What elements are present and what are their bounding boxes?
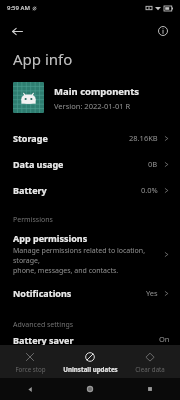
staticText: Force stop	[15, 365, 46, 373]
button[interactable]: Notifications	[0, 280, 180, 306]
button[interactable]: Battery saver	[0, 334, 180, 348]
staticText: 0.0%	[141, 185, 158, 195]
button[interactable]: Data usage	[0, 151, 180, 177]
button[interactable]: Clear data	[120, 348, 180, 376]
staticText: 9:59 AM	[7, 4, 30, 12]
staticText: App permissions	[13, 232, 88, 244]
staticText: Battery saver	[13, 334, 74, 346]
staticText: Version: 2022-01-01 R	[54, 101, 131, 111]
button[interactable]: Main components	[0, 80, 180, 115]
button[interactable]: Home	[60, 378, 120, 400]
button[interactable]: Recent apps	[120, 378, 180, 400]
button[interactable]: Uninstall updates	[60, 348, 120, 376]
staticText: Battery	[13, 184, 47, 196]
button[interactable]: Force stop	[0, 348, 60, 376]
staticText: Main components	[54, 85, 140, 98]
staticText: Data usage	[13, 158, 64, 170]
button[interactable]: Storage	[0, 125, 180, 151]
staticText: Storage	[13, 132, 48, 144]
staticText: Advanced settings	[13, 320, 74, 330]
button[interactable]: Back	[8, 22, 26, 40]
staticText: Clear data	[135, 365, 165, 373]
staticText: 0B	[148, 159, 158, 169]
button[interactable]: Battery	[0, 177, 180, 203]
staticText: App info	[13, 49, 73, 69]
staticText: Permissions	[13, 215, 53, 225]
staticText: On	[159, 334, 170, 344]
staticText: 28.16KB	[129, 133, 158, 143]
staticText: Uninstall updates	[63, 365, 118, 373]
staticText: Yes	[146, 288, 158, 298]
button[interactable]: App permissions	[0, 229, 180, 280]
staticText: Notifications	[13, 287, 72, 299]
button[interactable]: App details info	[154, 22, 172, 40]
staticText: Manage permissions related to location, …	[13, 246, 157, 276]
button[interactable]: Back	[0, 378, 60, 400]
